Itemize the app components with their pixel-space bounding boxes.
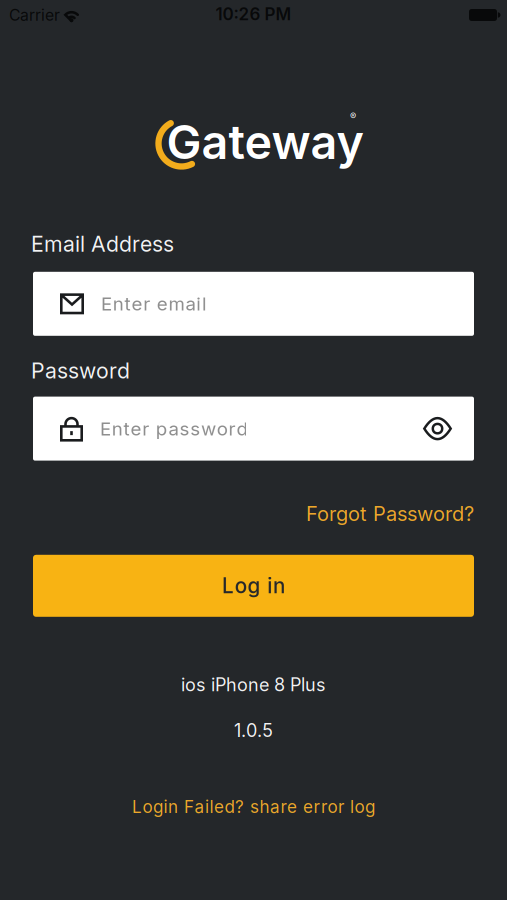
button[interactable]: Log in	[33, 555, 474, 617]
button[interactable]: Login Failed? share error log	[132, 796, 375, 817]
staticText: Enter email	[101, 292, 207, 315]
staticText: Carrier	[9, 5, 60, 24]
staticText: Enter password	[100, 417, 247, 440]
staticText: Email Address	[31, 231, 174, 257]
staticText: Login Failed? share error log	[132, 796, 375, 817]
staticText: ios iPhone 8 Plus	[181, 674, 326, 696]
staticText: Gateway	[166, 114, 363, 170]
staticText: Log in	[222, 573, 285, 598]
button[interactable]: Forgot Password?	[306, 502, 474, 526]
staticText: 1.0.5	[234, 720, 273, 741]
staticText: 10:26 PM	[215, 4, 291, 24]
staticText: ®	[350, 110, 356, 122]
staticText: Forgot Password?	[306, 502, 474, 526]
button[interactable]: Show password	[415, 410, 460, 448]
staticText: Password	[31, 358, 130, 384]
